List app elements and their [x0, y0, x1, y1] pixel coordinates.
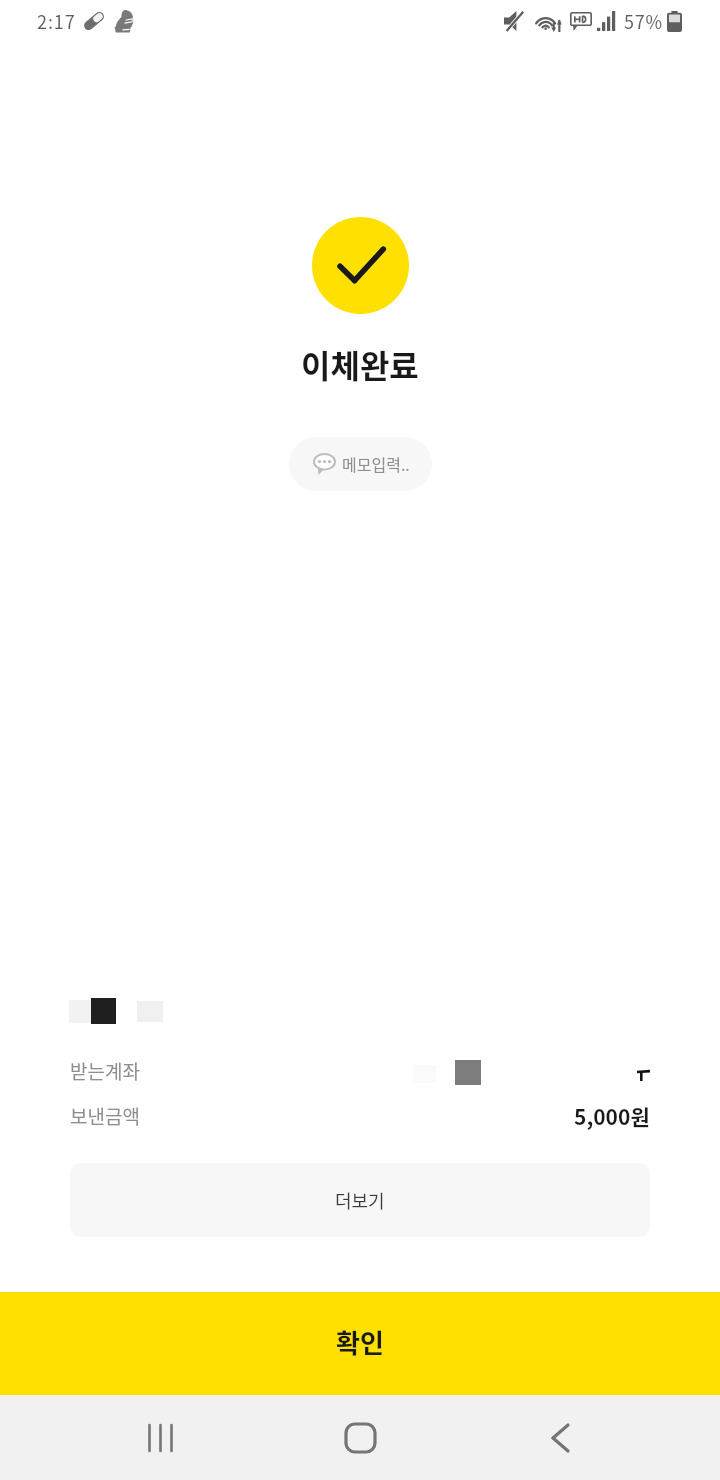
staticText: 보낸금액 [70, 1102, 140, 1130]
button[interactable]: 메모입력.. [289, 437, 432, 491]
staticText: 확인 [336, 1323, 384, 1361]
button[interactable]: 확인 [0, 1292, 720, 1395]
staticText: 57% [624, 8, 663, 34]
staticText: 5,000원 [574, 1101, 650, 1131]
button[interactable]: Back [460, 1395, 660, 1480]
staticText: 이체완료 [301, 341, 419, 387]
button[interactable]: Home [260, 1395, 460, 1480]
button[interactable]: Recent apps [60, 1395, 260, 1480]
button[interactable]: 더보기 [70, 1163, 650, 1237]
staticText: 메모입력.. [342, 452, 410, 475]
staticText: 2:17 [37, 8, 76, 34]
staticText: 받는계좌 [70, 1057, 140, 1085]
staticText: 더보기 [335, 1187, 385, 1213]
